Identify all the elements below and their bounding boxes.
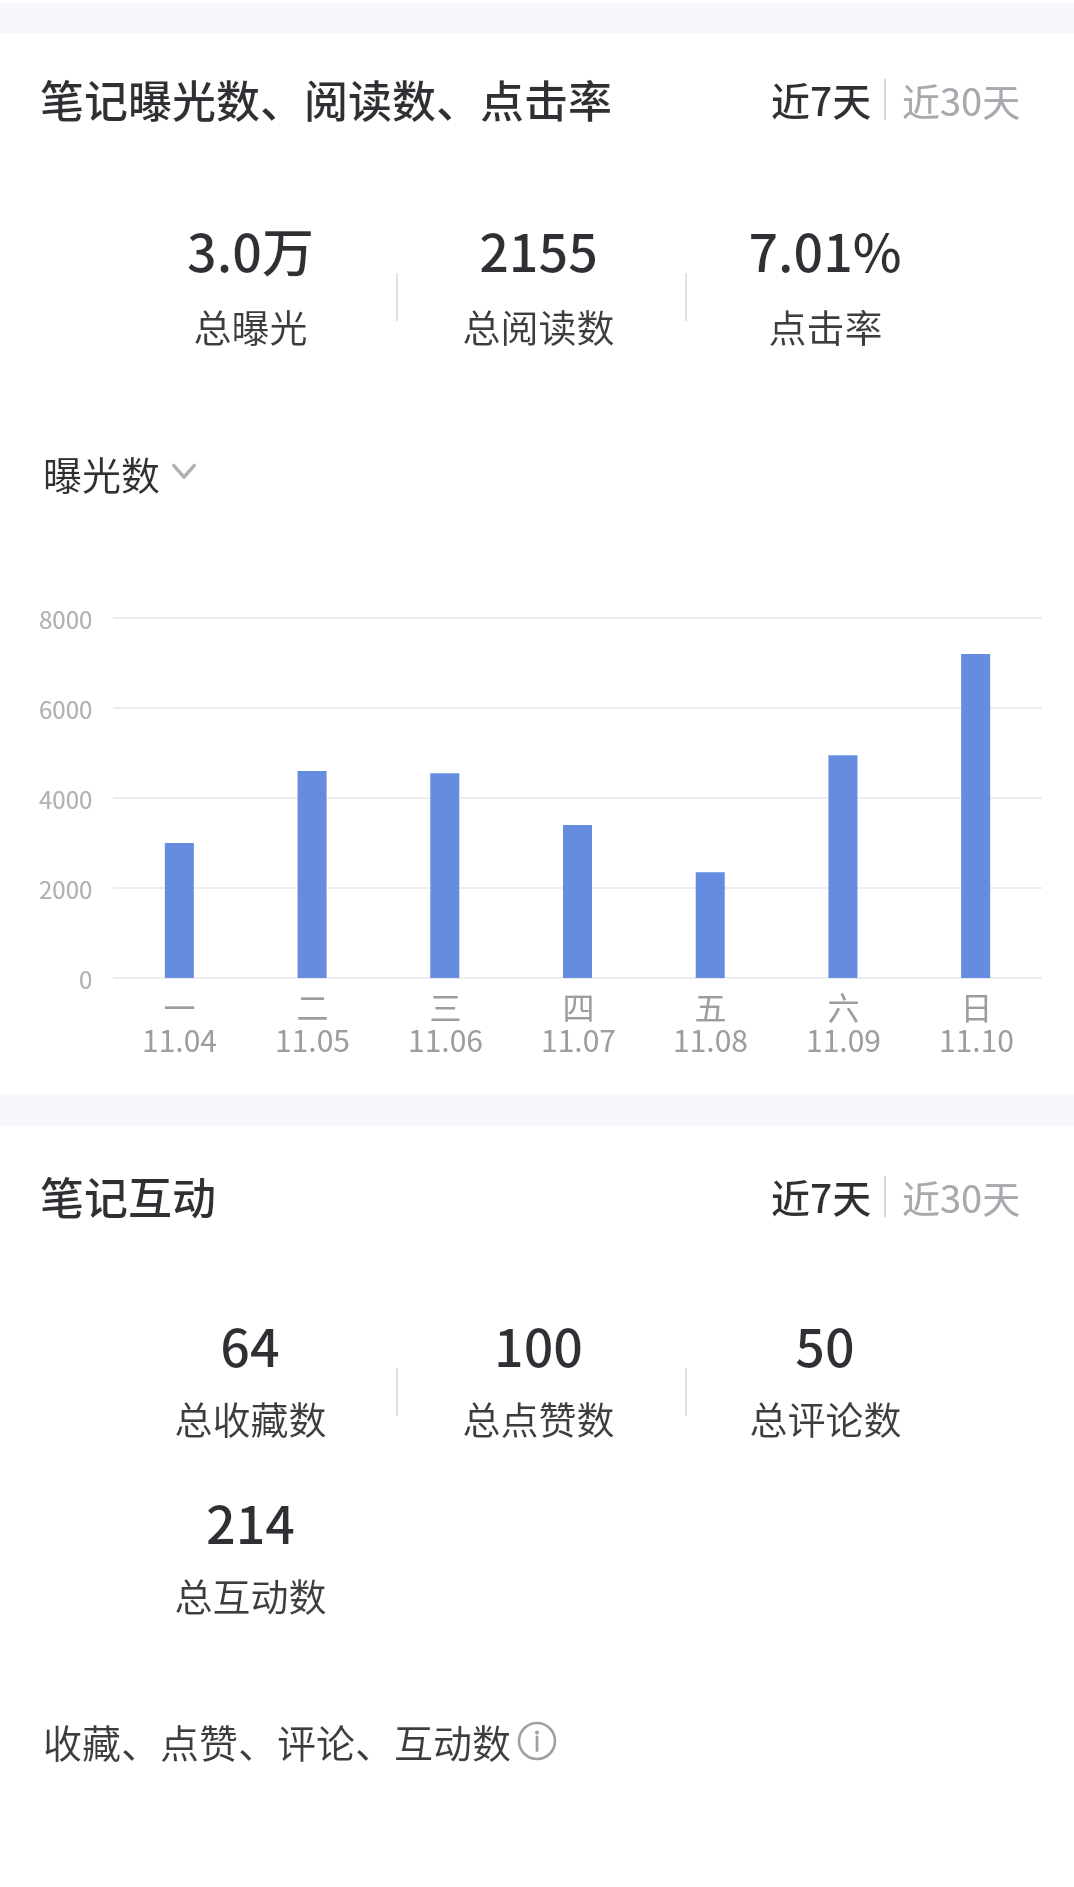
staticText: 11.09 [806, 1017, 881, 1060]
staticText: 总收藏数 [174, 1390, 327, 1445]
button[interactable]: 近7天 [762, 67, 880, 131]
staticText: 四 [562, 983, 595, 1029]
staticText: 11.04 [142, 1017, 217, 1060]
staticText: 总互动数 [174, 1567, 327, 1622]
staticText: 50 [795, 1307, 855, 1382]
staticText: 11.07 [541, 1017, 616, 1060]
staticText: 近30天 [902, 72, 1021, 127]
staticText: 100 [494, 1307, 583, 1382]
staticText: 总评论数 [749, 1390, 902, 1445]
staticText: 近7天 [771, 71, 872, 127]
staticText: 214 [206, 1484, 295, 1559]
button[interactable]: 曝光数 [30, 440, 230, 506]
staticText: 8000 [39, 601, 93, 636]
staticText: 总曝光 [193, 298, 308, 353]
staticText: 近7天 [771, 1168, 872, 1224]
staticText: 笔记曝光数、阅读数、点击率 [40, 67, 612, 131]
staticText: 11.06 [408, 1017, 483, 1060]
staticText: 曝光数 [43, 445, 161, 501]
button[interactable]: 近30天 [892, 1164, 1030, 1228]
staticText: 二 [296, 983, 329, 1029]
button[interactable]: 收藏、点赞、评论、互动数 [30, 1708, 570, 1774]
staticText: 六 [827, 983, 860, 1029]
staticText: 11.10 [939, 1017, 1014, 1060]
staticText: 6000 [39, 691, 93, 726]
staticText: 11.08 [673, 1017, 748, 1060]
staticText: 64 [220, 1307, 280, 1382]
staticText: 收藏、点赞、评论、互动数 [43, 1713, 512, 1769]
staticText: 五 [694, 983, 727, 1029]
staticText: 7.01% [748, 212, 902, 287]
button[interactable]: 近7天 [762, 1164, 880, 1228]
staticText: 总阅读数 [462, 298, 615, 353]
staticText: 3.0万 [187, 212, 314, 287]
staticText: 近30天 [902, 1169, 1021, 1224]
staticText: 4000 [39, 781, 93, 816]
staticText: 一 [163, 983, 196, 1029]
staticText: 2000 [39, 871, 93, 906]
staticText: 点击率 [768, 298, 883, 353]
staticText: 笔记互动 [40, 1164, 216, 1228]
staticText: 总点赞数 [462, 1390, 615, 1445]
staticText: 11.05 [275, 1017, 350, 1060]
staticText: 2155 [479, 212, 598, 287]
button[interactable]: 指标说明 [517, 1721, 557, 1761]
staticText: 三 [429, 983, 462, 1029]
staticText: 日 [960, 983, 993, 1029]
staticText: 0 [79, 961, 93, 996]
button[interactable]: 近30天 [892, 67, 1030, 131]
